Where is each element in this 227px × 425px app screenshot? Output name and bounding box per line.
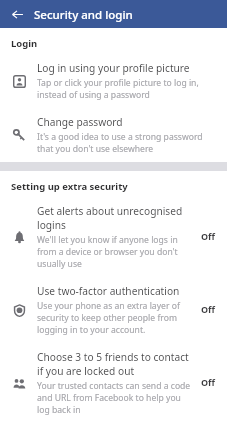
staticText: Use your phone as an extra layer of secu… xyxy=(37,300,191,336)
staticText: Off xyxy=(201,304,216,316)
staticText: Off xyxy=(201,377,216,389)
staticText: Change password xyxy=(37,115,123,129)
other: Change password xyxy=(11,127,27,143)
button[interactable]: Profile picture login xyxy=(0,54,227,108)
staticText: We'll let you know if anyone logs in fro… xyxy=(37,234,191,270)
other: Login alerts xyxy=(11,229,27,245)
button[interactable]: Login alerts xyxy=(0,197,227,277)
other: Profile picture login xyxy=(11,73,27,89)
other: Two-factor authentication xyxy=(11,302,27,318)
staticText: Security and login xyxy=(34,7,133,22)
button[interactable]: Back xyxy=(6,3,28,25)
staticText: Your trusted contacts can send a code an… xyxy=(37,380,191,416)
staticText: It's a good idea to use a strong passwor… xyxy=(37,131,219,155)
staticText: Use two-factor authentication xyxy=(37,284,180,298)
staticText: Off xyxy=(201,231,216,243)
staticText: Tap or click your profile picture to log… xyxy=(37,77,219,101)
other: Trusted contacts xyxy=(11,375,27,391)
staticText: Choose 3 to 5 friends to contact if you … xyxy=(37,350,191,378)
staticText: Setting up extra security xyxy=(11,180,128,192)
staticText: Login xyxy=(11,37,38,49)
button[interactable]: Trusted contacts xyxy=(0,343,227,423)
button[interactable]: Two-factor authentication xyxy=(0,277,227,343)
staticText: Get alerts about unrecognised logins xyxy=(37,204,191,232)
staticText: Log in using your profile picture xyxy=(37,61,190,75)
button[interactable]: Change password xyxy=(0,108,227,162)
